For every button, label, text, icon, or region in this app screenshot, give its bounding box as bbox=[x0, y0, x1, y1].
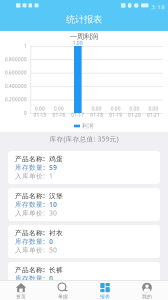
staticText: 01-18 bbox=[90, 112, 103, 118]
staticText: 01-17 bbox=[71, 112, 84, 118]
staticText: 0.00 bbox=[54, 106, 64, 112]
staticText: 0.00 bbox=[111, 106, 121, 112]
staticText: 01-15 bbox=[33, 112, 46, 118]
staticText: 库存(库存总值: 359元) bbox=[49, 134, 118, 144]
button[interactable]: 产品名称: 汉堡 bbox=[8, 188, 160, 221]
staticText: 0.800000 bbox=[5, 56, 27, 62]
staticText: 0.00 bbox=[130, 106, 140, 112]
button[interactable]: 产品名称: 鸡蛋 bbox=[8, 151, 160, 184]
staticText: 产品名称: 长裤 bbox=[15, 265, 63, 274]
staticText: 0 bbox=[24, 110, 27, 116]
staticText: 1.00 bbox=[73, 40, 83, 46]
staticText: 入库单价: 30 bbox=[15, 208, 57, 217]
staticText: 01-19 bbox=[109, 112, 122, 118]
button[interactable]: 产品名称: 衬衣 bbox=[8, 225, 160, 258]
staticText: 0.200000 bbox=[5, 96, 27, 103]
staticText: 产品名称: 汉堡 bbox=[15, 191, 63, 200]
staticText: 01-20 bbox=[128, 112, 141, 118]
button[interactable]: 产品名称: 长裤 bbox=[8, 262, 160, 295]
staticText: 库存数量: 0 bbox=[15, 237, 53, 246]
button[interactable]: 报表 bbox=[84, 280, 126, 300]
staticText: 入库单价: 60 bbox=[15, 282, 57, 291]
staticText: 利润 bbox=[82, 122, 94, 130]
button[interactable]: 单据 bbox=[42, 280, 84, 300]
staticText: 1 bbox=[24, 43, 27, 49]
staticText: 0.00 bbox=[92, 106, 102, 112]
staticText: 库存数量: 59 bbox=[15, 163, 57, 172]
button[interactable]: 我的 bbox=[126, 280, 168, 300]
staticText: 0.00 bbox=[148, 106, 158, 112]
staticText: 01-21 bbox=[147, 112, 160, 118]
staticText: 入库单价: 50 bbox=[15, 245, 57, 254]
staticText: 我的 bbox=[142, 294, 152, 300]
staticText: 产品名称: 衬衣 bbox=[15, 228, 63, 237]
staticText: 0.00 bbox=[35, 106, 45, 112]
staticText: 01-16 bbox=[52, 112, 65, 118]
staticText: 首页 bbox=[16, 294, 26, 300]
staticText: 单据 bbox=[58, 294, 68, 300]
staticText: 入库单价: 1 bbox=[15, 171, 53, 180]
staticText: 0.600000 bbox=[5, 70, 27, 76]
staticText: 3:18 bbox=[151, 3, 165, 11]
staticText: 一周利润 bbox=[70, 32, 98, 41]
staticText: 库存数量: 0 bbox=[15, 274, 53, 283]
staticText: 报表 bbox=[100, 294, 110, 300]
button[interactable]: 首页 bbox=[0, 280, 42, 300]
staticText: 库存数量: 10 bbox=[15, 200, 57, 209]
staticText: 0.400000 bbox=[5, 83, 27, 89]
staticText: 产品名称: 鸡蛋 bbox=[15, 154, 63, 163]
staticText: 统计报表 bbox=[66, 14, 102, 25]
